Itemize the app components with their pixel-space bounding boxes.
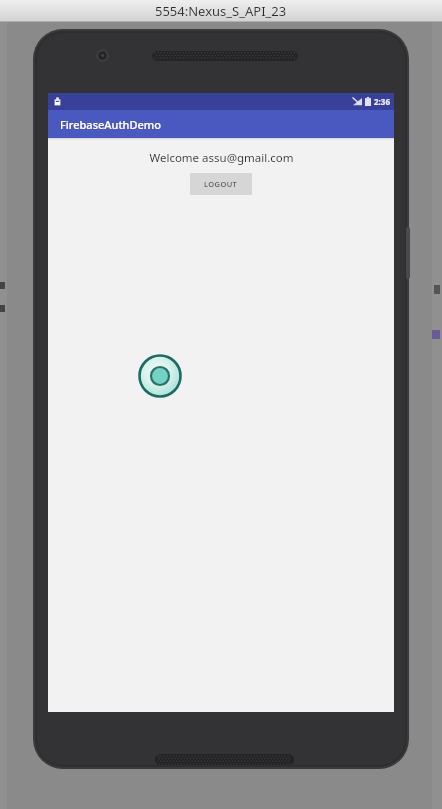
button[interactable]: FirebaseAuthDemo (48, 110, 394, 138)
staticText: Welcome assu@gmail.com (149, 150, 294, 166)
staticText: 5554:Nexus_S_API_23 (155, 2, 287, 20)
button[interactable]: LOGOUT (190, 173, 252, 195)
staticText: 2:36 (374, 96, 390, 107)
staticText: FirebaseAuthDemo (60, 117, 162, 132)
button[interactable]: Status indicator (138, 354, 182, 398)
staticText: LOGOUT (204, 179, 238, 189)
